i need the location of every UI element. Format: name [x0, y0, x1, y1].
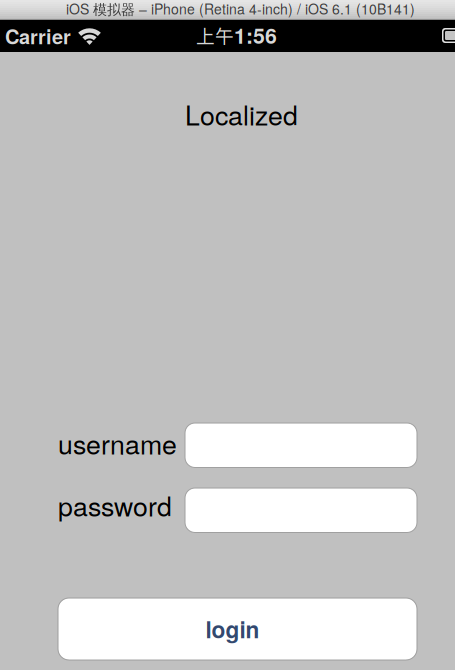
staticText: login [205, 613, 259, 645]
button[interactable]: login [58, 598, 417, 660]
staticText: 上午 [196, 21, 234, 48]
staticText: iOS 模拟器 – iPhone (Retina 4-inch) / iOS 6… [66, 0, 415, 19]
staticText: Carrier [5, 22, 71, 50]
staticText: password [58, 486, 172, 524]
staticText: 1:56 [234, 20, 277, 50]
staticText: username [58, 424, 177, 462]
staticText: Localized [185, 95, 298, 133]
